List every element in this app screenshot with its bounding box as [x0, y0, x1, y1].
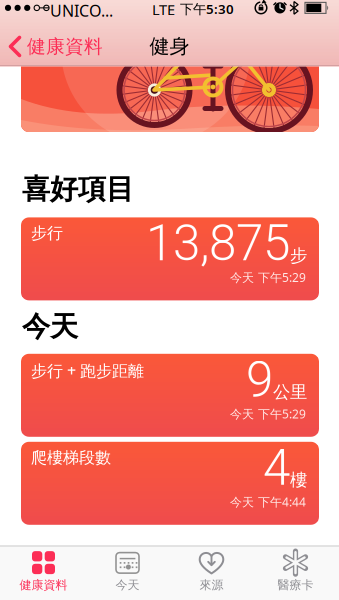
staticText: LTE — [152, 0, 175, 19]
button[interactable]: 醫療卡 — [253, 551, 337, 592]
staticText: 爬樓梯段數 — [31, 448, 111, 467]
staticText: 喜好項目 — [22, 172, 134, 206]
staticText: 醫療卡 — [277, 578, 313, 592]
button[interactable]: 步行 + 跑步距離 — [21, 354, 319, 437]
staticText: 今天 下午5:29 — [230, 406, 306, 422]
staticText: UNICO... — [50, 0, 113, 21]
staticText: 健身 — [149, 34, 189, 59]
button[interactable]: 健康資料 — [0, 35, 103, 58]
staticText: 來源 — [199, 578, 223, 592]
staticText: 今天 下午5:29 — [230, 269, 306, 285]
button[interactable]: 步行 — [21, 217, 319, 300]
staticText: 今天 下午4:44 — [230, 494, 306, 510]
staticText: 4 — [263, 439, 290, 497]
button[interactable]: 爬樓梯段數 — [21, 442, 319, 525]
staticText: 13,875 — [146, 214, 290, 272]
staticText: 樓 — [290, 469, 307, 491]
button[interactable]: 來源 — [169, 551, 253, 592]
staticText: 9 — [246, 351, 273, 409]
button[interactable]: 健康資料 — [1, 551, 85, 592]
staticText: 下午5:30 — [180, 0, 234, 18]
staticText: 今天 — [115, 578, 139, 592]
staticText: 健康資料 — [27, 35, 103, 58]
button[interactable]: 今天 — [85, 551, 169, 592]
staticText: 健康資料 — [19, 578, 67, 592]
staticText: 步行 — [31, 223, 63, 243]
staticText: 今天 — [22, 309, 78, 344]
staticText: 步行 + 跑步距離 — [31, 360, 144, 381]
staticText: 步 — [290, 245, 307, 266]
staticText: 公里 — [273, 381, 307, 403]
